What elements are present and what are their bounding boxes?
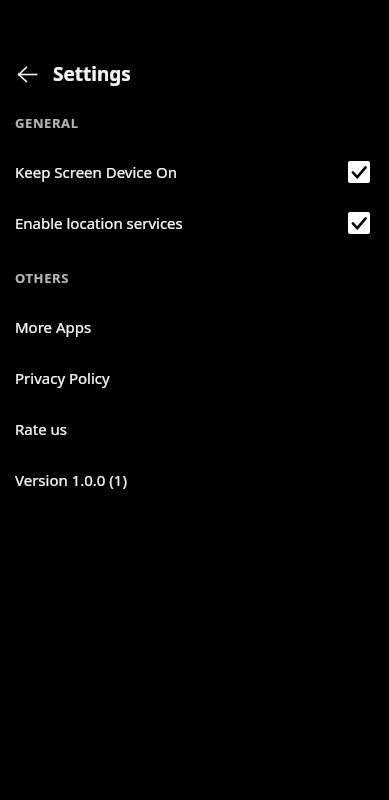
staticText: More Apps (15, 317, 370, 337)
staticText: Enable location services (15, 213, 348, 233)
button[interactable]: Enable location services (0, 197, 389, 248)
staticText: Privacy Policy (15, 368, 370, 388)
button[interactable]: Version 1.0.0 (1) (0, 454, 389, 505)
button[interactable]: More Apps (0, 301, 389, 352)
staticText: OTHERS (15, 269, 69, 287)
button[interactable]: Back (10, 57, 44, 91)
button[interactable]: Keep Screen Device On (0, 146, 389, 197)
staticText: Keep Screen Device On (15, 162, 348, 182)
staticText: Version 1.0.0 (1) (15, 470, 370, 490)
staticText: GENERAL (15, 114, 79, 132)
staticText: Rate us (15, 419, 370, 439)
staticText: Settings (53, 61, 131, 87)
button[interactable]: Privacy Policy (0, 352, 389, 403)
button[interactable]: Rate us (0, 403, 389, 454)
